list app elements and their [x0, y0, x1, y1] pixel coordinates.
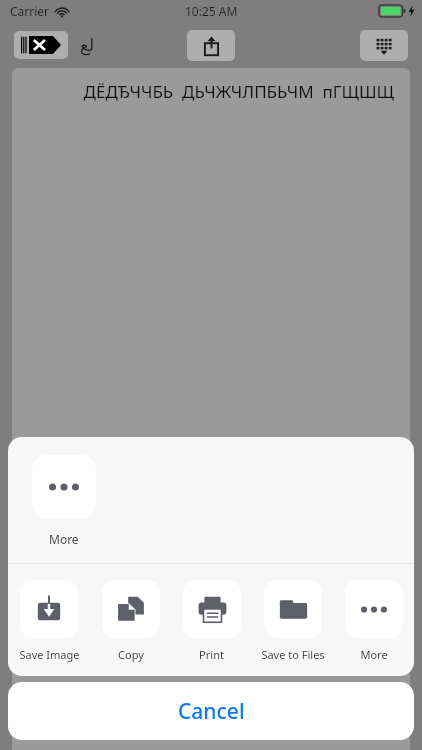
staticText: ДЁДЂЧЧБЬ ДЬЧЖЧЛПБЬЧМ пГЩШЩ: [83, 80, 394, 103]
button[interactable]: Save to Files: [252, 580, 333, 662]
button[interactable]: Print: [171, 580, 252, 662]
staticText: Carrier: [10, 3, 50, 19]
button[interactable]: Adlam: [105, 720, 210, 750]
staticText: لع: [80, 35, 95, 55]
staticText: Print: [199, 647, 224, 662]
button[interactable]: Share: [0, 720, 105, 750]
button[interactable]: English: [210, 720, 316, 750]
button[interactable]: More: [32, 455, 96, 547]
button[interactable]: Hide keyboard: [360, 30, 408, 61]
button[interactable]: Copy: [90, 580, 171, 662]
staticText: Save Image: [19, 647, 80, 662]
button[interactable]: Save Image: [8, 580, 90, 662]
staticText: More: [49, 531, 79, 547]
staticText: More: [360, 647, 388, 662]
button[interactable]: More: [333, 580, 414, 662]
staticText: Save to Files: [261, 647, 325, 662]
button[interactable]: Share: [187, 30, 235, 61]
staticText: Cancel: [178, 697, 245, 726]
staticText: Copy: [118, 647, 144, 662]
button[interactable]: Cancel: [8, 682, 414, 740]
staticText: 10:25 AM: [185, 3, 238, 19]
button[interactable]: Label tag: [14, 31, 68, 59]
button[interactable]: Français: [316, 720, 422, 750]
